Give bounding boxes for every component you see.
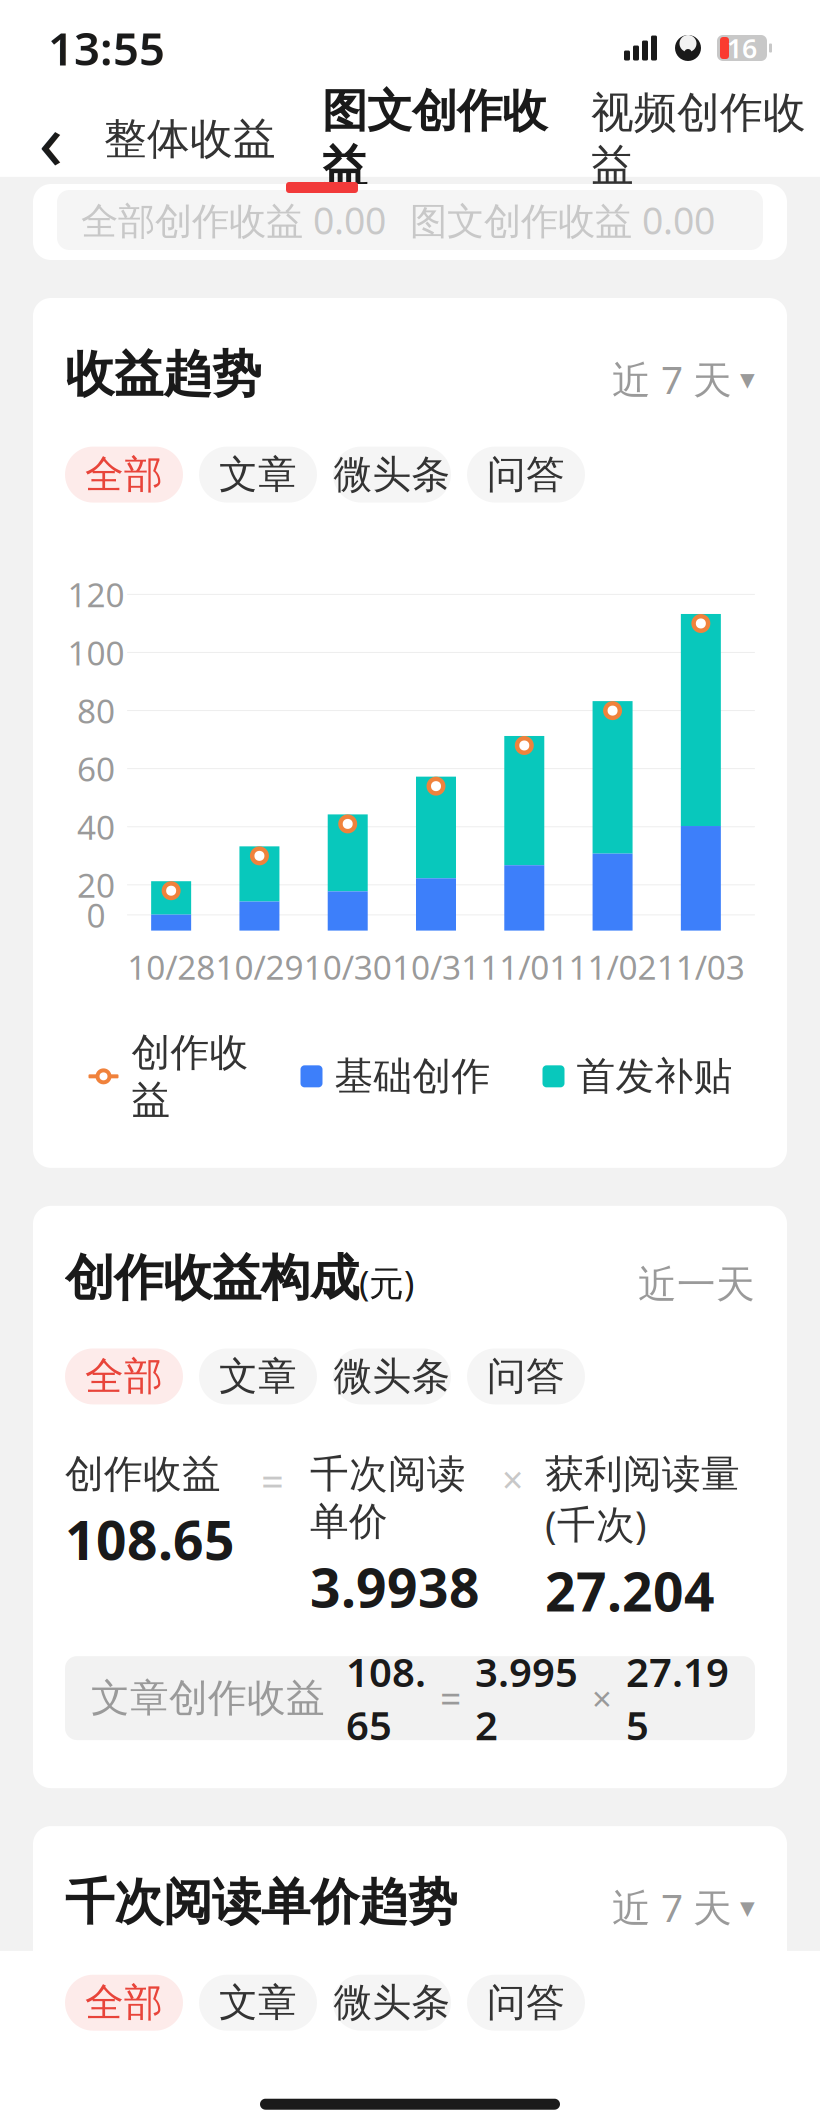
button[interactable]: 视频创作收益 (587, 87, 810, 191)
button[interactable]: 微头条 (333, 447, 451, 503)
staticText: 全部 (85, 1979, 163, 2026)
button[interactable]: 文章 (199, 447, 317, 503)
staticText: 文章创作收益 (91, 1674, 325, 1722)
staticText: 0 (86, 893, 105, 937)
staticText: 16 (727, 30, 757, 66)
staticText: 基础创作 (334, 1053, 490, 1100)
staticText: 11/03 (657, 945, 745, 989)
staticText: 全部 (85, 1353, 163, 1400)
button[interactable]: 问答 (467, 447, 585, 503)
staticText: 微头条 (333, 1979, 450, 2026)
staticText: 收益趋势 (65, 344, 261, 405)
staticText: 获利阅读量(千次) (545, 1450, 740, 1549)
button[interactable]: 文章 (199, 1975, 317, 2031)
staticText: 27.195 (626, 1645, 729, 1751)
staticText: 120 (67, 572, 124, 616)
staticText: 视频创作收益 (591, 87, 806, 191)
staticText: ‹ (38, 86, 63, 192)
button[interactable]: 微头条 (333, 1348, 451, 1404)
staticText: 10/31 (392, 945, 480, 989)
staticText: 千次阅读单价 (310, 1450, 466, 1545)
button[interactable]: 问答 (467, 1348, 585, 1404)
staticText: 文章 (219, 1353, 297, 1400)
staticText: 27.204 (545, 1555, 715, 1626)
staticText: 问答 (487, 1353, 565, 1400)
staticText: 10/28 (127, 945, 215, 989)
staticText: 80 (77, 688, 115, 733)
staticText: 图文创作收益 0.00 (410, 195, 715, 245)
staticText: 问答 (487, 1979, 565, 2026)
button[interactable]: 问答 (467, 1975, 585, 2031)
staticText: 文章 (219, 451, 297, 498)
staticText: 10/29 (215, 945, 303, 989)
staticText: 108.65 (65, 1504, 235, 1575)
staticText: 千次阅读单价趋势 (65, 1872, 457, 1933)
button[interactable]: 微头条 (333, 1975, 451, 2031)
staticText: 11/02 (569, 945, 657, 989)
staticText: = (261, 1454, 284, 1507)
button[interactable]: 全部 (65, 447, 183, 503)
staticText: 全部 (85, 451, 163, 498)
staticText: 创作收益 (65, 1450, 221, 1498)
staticText: 40 (77, 805, 115, 849)
staticText: 13:55 (48, 18, 165, 78)
staticText: ▾ (740, 1890, 755, 1924)
button[interactable]: 近 7 天 (612, 353, 755, 404)
staticText: 近 7 天 (612, 353, 732, 404)
button[interactable]: 近 7 天 (612, 1881, 755, 1933)
staticText: 近 7 天 (612, 1881, 732, 1933)
staticText: 创作收益 (131, 1029, 248, 1124)
staticText: = (440, 1673, 461, 1723)
button[interactable]: 图文创作收益 (318, 83, 551, 195)
staticText: × (592, 1675, 612, 1721)
staticText: ▾ (740, 362, 755, 396)
staticText: 微头条 (333, 1353, 450, 1400)
button[interactable]: 全部 (65, 1975, 183, 2031)
staticText: 微头条 (333, 451, 450, 498)
staticText: 11/01 (480, 945, 568, 989)
button[interactable]: 文章 (199, 1348, 317, 1404)
staticText: 3.9938 (310, 1551, 480, 1622)
staticText: 整体收益 (104, 113, 276, 165)
staticText: × (502, 1454, 523, 1504)
staticText: 问答 (487, 451, 565, 498)
staticText: 100 (67, 630, 124, 675)
staticText: 10/30 (304, 945, 392, 989)
button[interactable]: 整体收益 (98, 113, 282, 165)
button[interactable]: Back (22, 104, 80, 174)
staticText: 图文创作收益 (322, 83, 547, 195)
staticText: 文章 (219, 1979, 297, 2026)
button[interactable]: 近一天 (638, 1261, 755, 1308)
staticText: 全部创作收益 0.00 (81, 195, 386, 245)
staticText: (元) (359, 1259, 414, 1305)
staticText: 108.65 (346, 1645, 426, 1751)
staticText: 60 (77, 746, 115, 791)
staticText: 20 (77, 863, 115, 907)
staticText: 首发补贴 (576, 1053, 732, 1100)
staticText: 创作收益构成 (65, 1248, 359, 1308)
staticText: 近一天 (638, 1261, 755, 1308)
staticText: 3.9952 (475, 1645, 578, 1751)
button[interactable]: 全部 (65, 1348, 183, 1404)
